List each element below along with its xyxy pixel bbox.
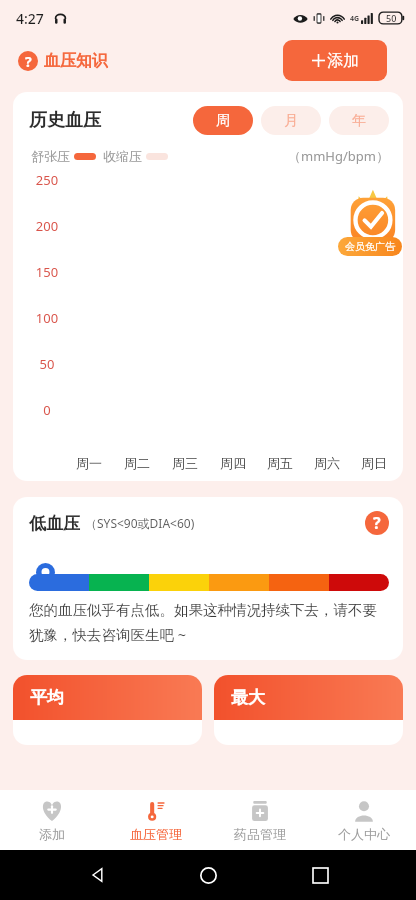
staticText: 0 [31,401,63,419]
button[interactable]: 血压管理 [104,790,208,850]
staticText: 周三 [172,455,198,471]
button[interactable]: 周 [193,106,253,135]
staticText: 舒张压 [31,148,70,164]
button[interactable]: 最大 [214,675,403,745]
button[interactable]: 月 [261,106,321,135]
staticText: 250 [31,171,63,189]
staticText: 周 [216,112,230,130]
staticText: 50 [31,355,63,373]
staticText: 50 [386,12,397,24]
button[interactable]: 个人中心 [312,790,416,850]
staticText: 血压管理 [130,826,182,842]
staticText: 低血压 [29,513,80,534]
button[interactable]: Home [193,860,223,890]
staticText: 最大 [231,687,265,708]
staticText: 会员免广告 [345,240,395,253]
button[interactable]: 会员免广告 [339,188,403,256]
button[interactable]: 平均 [13,675,202,745]
staticText: 周五 [267,455,293,471]
button[interactable]: 添加 [283,40,387,81]
button[interactable]: Back [82,860,112,890]
staticText: 周四 [220,455,246,471]
button[interactable]: Recents [305,860,335,890]
staticText: ? [373,512,381,534]
staticText: 周日 [361,455,387,471]
button[interactable]: 添加 [0,790,104,850]
staticText: 平均 [30,687,64,708]
staticText: 年 [352,112,366,130]
staticText: 月 [284,112,298,130]
staticText: 收缩压 [103,148,142,164]
staticText: 周六 [314,455,340,471]
staticText: （mmHg/bpm） [288,147,389,165]
staticText: 100 [31,309,63,327]
staticText: 150 [31,263,63,281]
staticText: 个人中心 [338,826,390,842]
button[interactable]: 药品管理 [208,790,312,850]
staticText: ? [25,52,32,71]
staticText: 200 [31,217,63,235]
staticText: 周二 [124,455,150,471]
button[interactable]: 年 [329,106,389,135]
staticText: 添加 [327,51,359,71]
staticText: 4G [350,14,360,24]
staticText: 4:27 [16,9,44,28]
staticText: 血压知识 [44,51,108,71]
staticText: 您的血压似乎有点低。如果这种情况持续下去，请不要犹豫，快去咨询医生吧 ~ [29,601,389,644]
staticText: 周一 [76,455,102,471]
staticText: 历史血压 [29,109,101,132]
staticText: 添加 [39,826,65,842]
staticText: 药品管理 [234,826,286,842]
button[interactable]: 帮助 [365,511,389,535]
staticText: （SYS<90或DIA<60) [85,515,195,531]
button[interactable]: ? [16,49,110,73]
